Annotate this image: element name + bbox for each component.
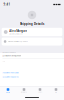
button[interactable]: Home (0, 86, 16, 95)
button[interactable]: Orders (16, 86, 32, 95)
staticText: Me (55, 91, 57, 93)
button[interactable]: Standard delivery, 3–5 days (2, 37, 62, 45)
staticText: Orders (21, 91, 27, 93)
staticText: DELIVERY ADDRESS (2, 51, 16, 53)
staticText: Add delivery instructions (2, 72, 19, 74)
button[interactable]: Use a different address (0, 75, 64, 79)
staticText: 221B Baker Street, London (2, 55, 21, 57)
staticText: Home (6, 91, 10, 93)
staticText: Cart (38, 91, 41, 93)
button[interactable]: Alex Morgan (2, 28, 62, 36)
staticText: Shipping Details (20, 22, 44, 26)
staticText: alex@example.com (9, 33, 22, 35)
staticText: Use a different address (2, 76, 19, 78)
staticText: 9:41 (3, 3, 10, 6)
staticText: Note (2, 60, 5, 62)
button[interactable]: Cart (32, 86, 48, 95)
staticText: Standard delivery, 3–5 days (8, 41, 28, 42)
button[interactable]: Me (48, 86, 64, 95)
staticText: Alex Morgan (9, 29, 27, 33)
button[interactable]: Add delivery instructions (0, 71, 64, 75)
